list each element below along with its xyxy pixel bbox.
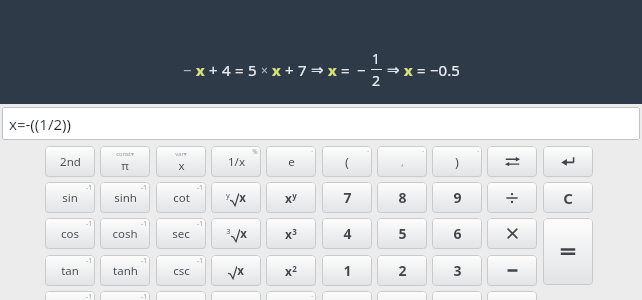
staticText: 4 xyxy=(343,224,352,243)
button[interactable]: cotangent xyxy=(156,182,206,213)
button[interactable]: 2nd xyxy=(45,146,95,177)
staticText: -1 xyxy=(141,183,147,192)
button[interactable]: plus or minus xyxy=(487,291,537,300)
staticText: 3 xyxy=(453,261,462,280)
staticText: sinh xyxy=(114,190,137,206)
staticText: + xyxy=(285,60,294,80)
staticText: = xyxy=(417,60,426,80)
staticText: 7 xyxy=(298,60,307,80)
button[interactable]: y-th root of x xyxy=(211,182,261,213)
button[interactable]: cube root of x xyxy=(211,218,261,249)
button[interactable]: nine xyxy=(432,182,482,213)
staticText: −0.5 xyxy=(430,60,460,80)
staticText: 8 xyxy=(398,188,407,207)
button[interactable]: pi constant xyxy=(100,146,150,177)
button[interactable]: cosecant xyxy=(156,255,206,286)
staticText: cos xyxy=(61,226,79,242)
staticText: · xyxy=(311,147,313,156)
staticText: ( xyxy=(345,153,349,171)
button[interactable]: Enter xyxy=(543,146,593,177)
button[interactable]: e xyxy=(266,146,316,177)
staticText: x xyxy=(404,60,413,80)
button[interactable]: five xyxy=(377,218,427,249)
staticText: 5 xyxy=(248,60,257,80)
button[interactable]: natural logarithm xyxy=(100,291,150,300)
staticText: x xyxy=(328,60,337,80)
button[interactable]: Minus xyxy=(487,255,537,286)
button[interactable]: hyperbolic tangent xyxy=(100,255,150,286)
staticText: 2 xyxy=(292,263,297,274)
staticText: ⇒ xyxy=(387,61,400,78)
button[interactable]: zero xyxy=(322,291,372,300)
button[interactable]: six xyxy=(432,218,482,249)
button[interactable]: Plus xyxy=(432,291,482,300)
staticText: x xyxy=(285,226,292,242)
button[interactable]: cosine xyxy=(45,218,95,249)
button[interactable]: one over x, percent xyxy=(211,146,261,177)
staticText: C xyxy=(563,188,573,208)
staticText: x xyxy=(239,190,246,206)
button[interactable]: logarithm xyxy=(45,291,95,300)
staticText: × xyxy=(261,62,268,78)
staticText: % xyxy=(252,147,258,156)
button[interactable]: Swap xyxy=(487,146,537,177)
staticText: 3 xyxy=(292,226,297,237)
button[interactable]: Multiply xyxy=(487,218,537,249)
staticText: · xyxy=(422,147,424,156)
staticText: 3 xyxy=(226,226,231,236)
button[interactable]: x squared xyxy=(266,255,316,286)
staticText: tan xyxy=(61,263,79,279)
staticText: -1 xyxy=(141,219,147,228)
button[interactable]: x to the power y xyxy=(266,182,316,213)
button[interactable]: hyperbolic sine xyxy=(100,182,150,213)
button[interactable]: Divide xyxy=(487,182,537,213)
button[interactable]: n factorial xyxy=(211,291,261,300)
staticText: -1 xyxy=(86,183,92,192)
staticText: 2nd xyxy=(60,154,81,170)
button[interactable]: two xyxy=(377,255,427,286)
button[interactable]: absolute value xyxy=(156,291,206,300)
staticText: sin xyxy=(62,190,78,206)
staticText: x xyxy=(196,60,205,80)
button[interactable]: open parenthesis xyxy=(322,146,372,177)
button[interactable]: hyperbolic cosine xyxy=(100,218,150,249)
button[interactable]: decimal point xyxy=(377,291,427,300)
staticText: cosh xyxy=(112,226,138,242)
button[interactable]: square root of x xyxy=(211,255,261,286)
staticText: 7 xyxy=(343,188,352,207)
button[interactable]: Clear xyxy=(543,182,593,213)
button[interactable]: x=-((1/2)) xyxy=(2,107,640,140)
button[interactable]: tangent xyxy=(45,255,95,286)
button[interactable]: four xyxy=(322,218,372,249)
staticText: x xyxy=(272,60,281,80)
staticText: x xyxy=(285,263,292,279)
staticText: x xyxy=(178,158,185,174)
button[interactable]: seven xyxy=(322,182,372,213)
button[interactable]: x cubed xyxy=(266,218,316,249)
button[interactable]: sine xyxy=(45,182,95,213)
staticText: − xyxy=(183,60,192,80)
staticText: tanh xyxy=(113,263,138,279)
button[interactable]: secant xyxy=(156,218,206,249)
button[interactable]: eight xyxy=(377,182,427,213)
button[interactable]: three xyxy=(432,255,482,286)
button[interactable]: exponent xyxy=(266,291,316,300)
button[interactable]: close parenthesis xyxy=(432,146,482,177)
staticText: 9 xyxy=(453,188,462,207)
staticText: x xyxy=(240,226,247,242)
button[interactable]: comma xyxy=(377,146,427,177)
staticText: -1 xyxy=(141,256,147,265)
staticText: + xyxy=(209,60,218,80)
staticText: e xyxy=(288,154,295,170)
button[interactable]: variable x xyxy=(156,146,206,177)
button[interactable]: Equals xyxy=(543,218,593,285)
staticText: ⇒ xyxy=(311,61,324,78)
button[interactable]: one xyxy=(322,255,372,286)
staticText: · xyxy=(477,147,479,156)
staticText: 4 xyxy=(222,60,231,80)
